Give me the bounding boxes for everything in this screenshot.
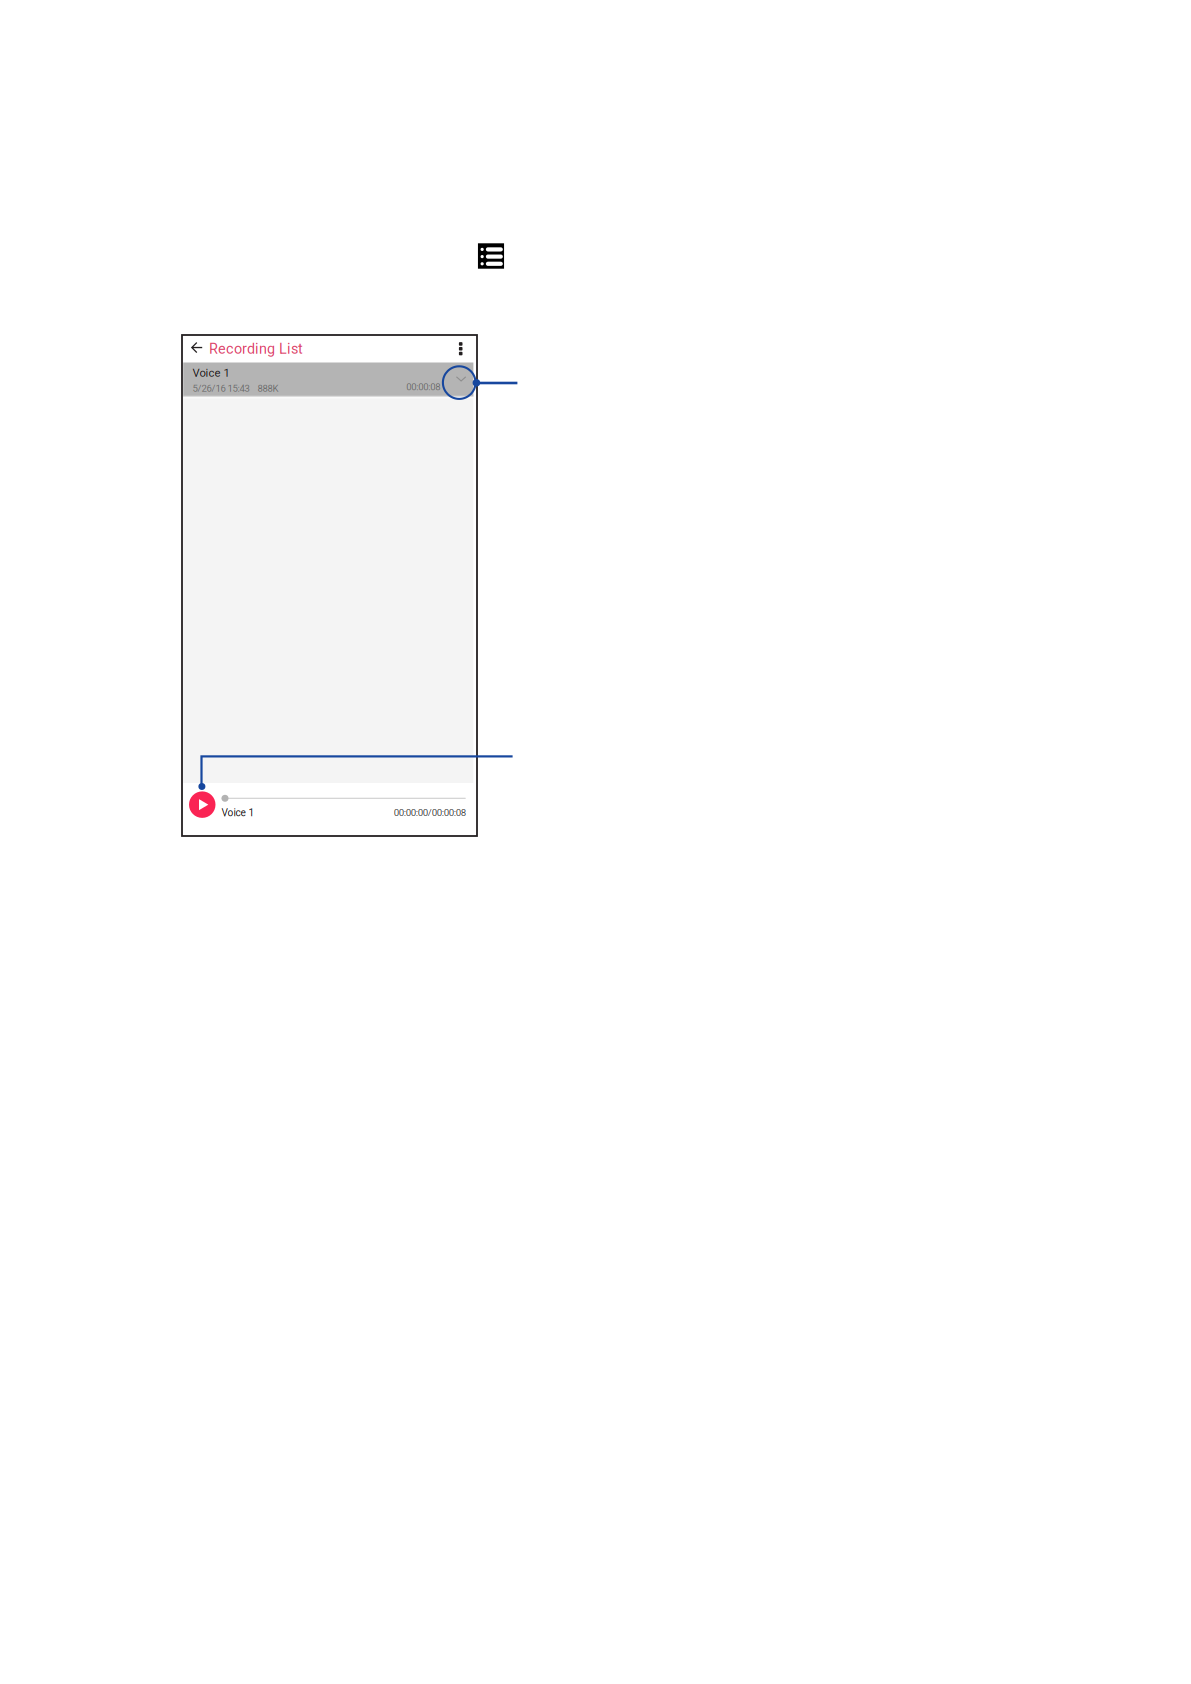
staticText: Voice 1 xyxy=(192,366,229,380)
button[interactable]: Voice 1 xyxy=(183,362,473,395)
staticText: Recording List xyxy=(209,340,303,357)
button[interactable]: Play xyxy=(189,791,215,818)
staticText: 00:00:08 xyxy=(406,381,440,393)
staticText: 00:00:00/00:00:08 xyxy=(394,807,466,818)
staticText: Voice 1 xyxy=(221,807,254,819)
button[interactable]: More options xyxy=(449,335,477,362)
button[interactable]: Recording List xyxy=(209,334,303,363)
button[interactable]: Back xyxy=(182,335,209,362)
staticText: 5/26/16 15:43 888K xyxy=(192,383,278,394)
